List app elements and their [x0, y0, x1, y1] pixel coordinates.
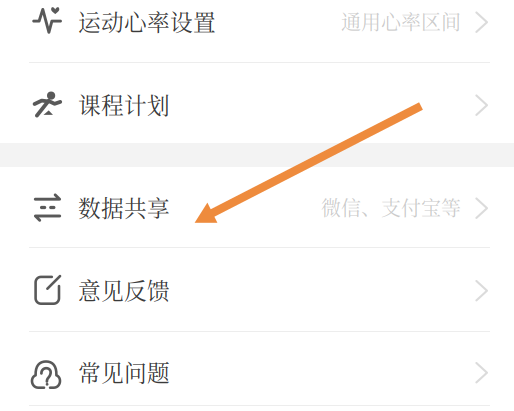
button[interactable]: 数据共享	[0, 167, 514, 247]
staticText: 运动心率设置	[78, 5, 216, 37]
button[interactable]: 常见问题	[0, 332, 514, 405]
staticText: 通用心率区间	[341, 7, 461, 35]
button[interactable]: 运动心率设置	[0, 0, 514, 62]
staticText: 数据共享	[78, 191, 170, 223]
staticText: 意见反馈	[78, 273, 170, 306]
button[interactable]: 课程计划	[0, 63, 514, 143]
staticText: 微信、支付宝等	[321, 193, 461, 221]
staticText: 常见问题	[78, 355, 170, 388]
button[interactable]: 意见反馈	[0, 248, 514, 331]
staticText: 课程计划	[78, 88, 170, 120]
